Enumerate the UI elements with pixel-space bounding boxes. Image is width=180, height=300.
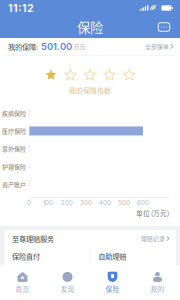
staticText: 理赔记录 bbox=[141, 234, 165, 243]
staticText: 资产账户 bbox=[2, 180, 26, 189]
staticText: 疾病保险 bbox=[2, 109, 26, 117]
staticText: 自助理赔 bbox=[98, 251, 126, 261]
staticText: 100 bbox=[43, 199, 53, 206]
staticText: 11:12 bbox=[8, 1, 34, 14]
button[interactable]: 首页 bbox=[0, 265, 45, 300]
staticText: 500 bbox=[118, 199, 130, 206]
staticText: 发现 bbox=[60, 284, 74, 294]
staticText: 护理保险 bbox=[2, 162, 26, 171]
button[interactable]: 全部保单 bbox=[145, 39, 173, 54]
button[interactable]: 发现 bbox=[45, 265, 90, 300]
staticText: 501.00 bbox=[41, 41, 72, 52]
button[interactable]: 自助理赔 bbox=[90, 247, 176, 265]
button[interactable]: 保险直付 bbox=[4, 247, 90, 265]
staticText: 单位 (万元) bbox=[136, 208, 169, 218]
staticText: 600 bbox=[137, 199, 149, 206]
button[interactable]: 保险 bbox=[90, 265, 135, 300]
staticText: 保险直付 bbox=[12, 251, 40, 261]
staticText: 保险 bbox=[77, 17, 103, 37]
staticText: 至尊理赔服务 bbox=[12, 233, 54, 244]
staticText: 全部保单 bbox=[145, 42, 169, 51]
staticText: 保险 bbox=[105, 284, 119, 294]
button[interactable]: 理赔记录 bbox=[141, 231, 169, 246]
staticText: 首页 bbox=[15, 284, 29, 294]
staticText: 医疗保险 bbox=[2, 127, 26, 135]
button[interactable]: 我的 bbox=[135, 265, 180, 300]
staticText: 我的保障: bbox=[8, 41, 38, 52]
staticText: 我的 bbox=[150, 284, 164, 294]
staticText: 0 bbox=[27, 199, 31, 206]
staticText: 200 bbox=[61, 199, 73, 206]
staticText: 300 bbox=[80, 199, 92, 206]
staticText: 我的保障指数 bbox=[69, 86, 111, 95]
staticText: 400 bbox=[99, 199, 111, 206]
button[interactable]: 消息 bbox=[153, 17, 175, 37]
staticText: 意外保险 bbox=[2, 144, 26, 153]
staticText: 万元 bbox=[73, 42, 85, 51]
